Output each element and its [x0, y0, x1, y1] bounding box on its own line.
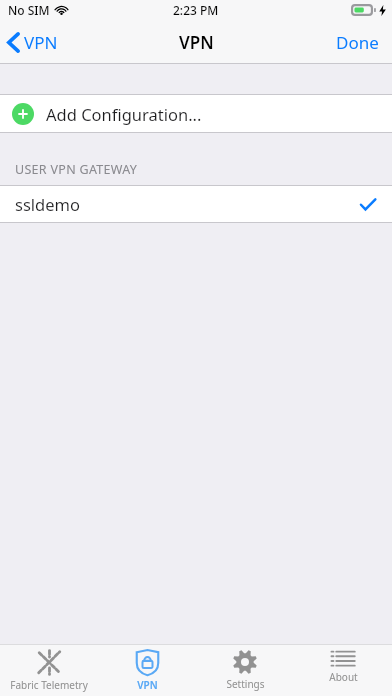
- staticText: VPN: [179, 31, 214, 54]
- staticText: Add Configuration...: [46, 103, 202, 125]
- button[interactable]: Add Configuration...: [0, 95, 392, 132]
- button[interactable]: VPN: [0, 25, 68, 60]
- button[interactable]: VPN: [98, 645, 196, 696]
- staticText: VPN: [24, 31, 58, 54]
- button[interactable]: Settings: [196, 645, 294, 696]
- staticText: 2:23 PM: [173, 2, 219, 18]
- staticText: ssldemo: [15, 193, 80, 215]
- staticText: About: [329, 670, 358, 684]
- staticText: USER VPN GATEWAY: [15, 161, 138, 178]
- button[interactable]: Done: [323, 23, 392, 62]
- staticText: No SIM: [8, 2, 50, 18]
- button[interactable]: Fabric Telemetry: [0, 645, 98, 696]
- button[interactable]: ssldemo: [0, 186, 392, 222]
- button[interactable]: About: [294, 645, 392, 696]
- staticText: VPN: [137, 678, 158, 692]
- staticText: Done: [336, 31, 379, 54]
- staticText: Settings: [226, 677, 265, 691]
- staticText: Fabric Telemetry: [10, 678, 88, 692]
